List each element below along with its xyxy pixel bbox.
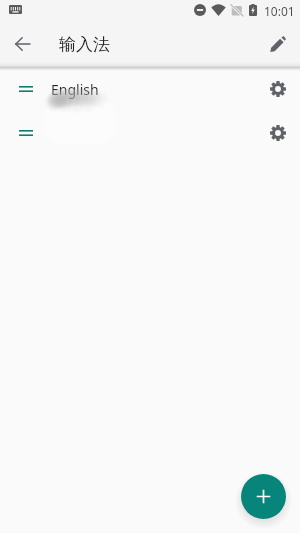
staticText: English <box>51 80 99 99</box>
button[interactable]: Add input method <box>241 474 286 519</box>
button[interactable]: English <box>0 67 300 111</box>
button[interactable]: Edit <box>258 24 298 64</box>
staticText: 输入法 <box>59 34 110 55</box>
button[interactable]: Settings <box>0 111 300 155</box>
button[interactable]: Back <box>2 24 42 64</box>
button[interactable]: Settings <box>258 69 298 109</box>
button[interactable]: Settings <box>258 113 298 153</box>
staticText: 10:01 <box>264 3 295 19</box>
